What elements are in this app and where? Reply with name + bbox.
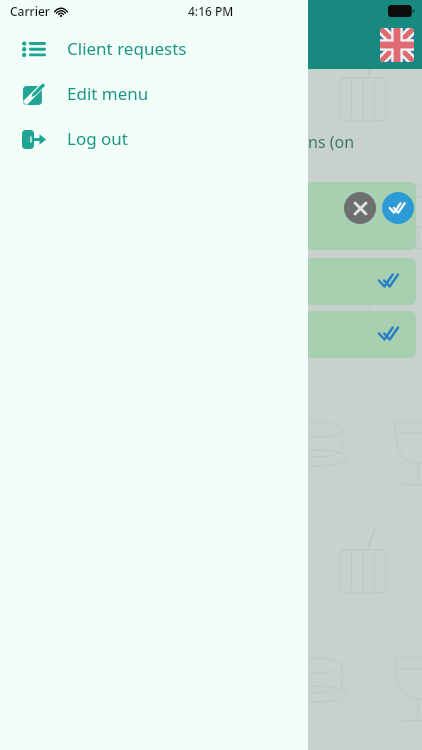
button[interactable]: Decline xyxy=(344,192,376,224)
button[interactable]: Edit menu xyxy=(0,71,308,116)
staticText: Log out xyxy=(67,127,128,150)
button[interactable]: Accepted xyxy=(306,311,416,358)
staticText: Client requests xyxy=(67,37,187,60)
button[interactable]: Log out xyxy=(0,116,308,161)
button[interactable]: Accepted xyxy=(306,258,416,305)
button[interactable]: Decline xyxy=(306,182,416,250)
button[interactable]: Accepted xyxy=(376,320,402,346)
staticText: Carrier xyxy=(10,3,50,19)
button[interactable]: Accepted xyxy=(376,267,402,293)
button[interactable]: Accept xyxy=(382,192,414,224)
staticText: 4:16 PM xyxy=(188,3,234,19)
button[interactable]: Client requests xyxy=(0,26,308,71)
staticText: Edit menu xyxy=(67,82,149,105)
button[interactable]: Language xyxy=(380,28,414,62)
staticText: ns (on xyxy=(308,131,355,153)
